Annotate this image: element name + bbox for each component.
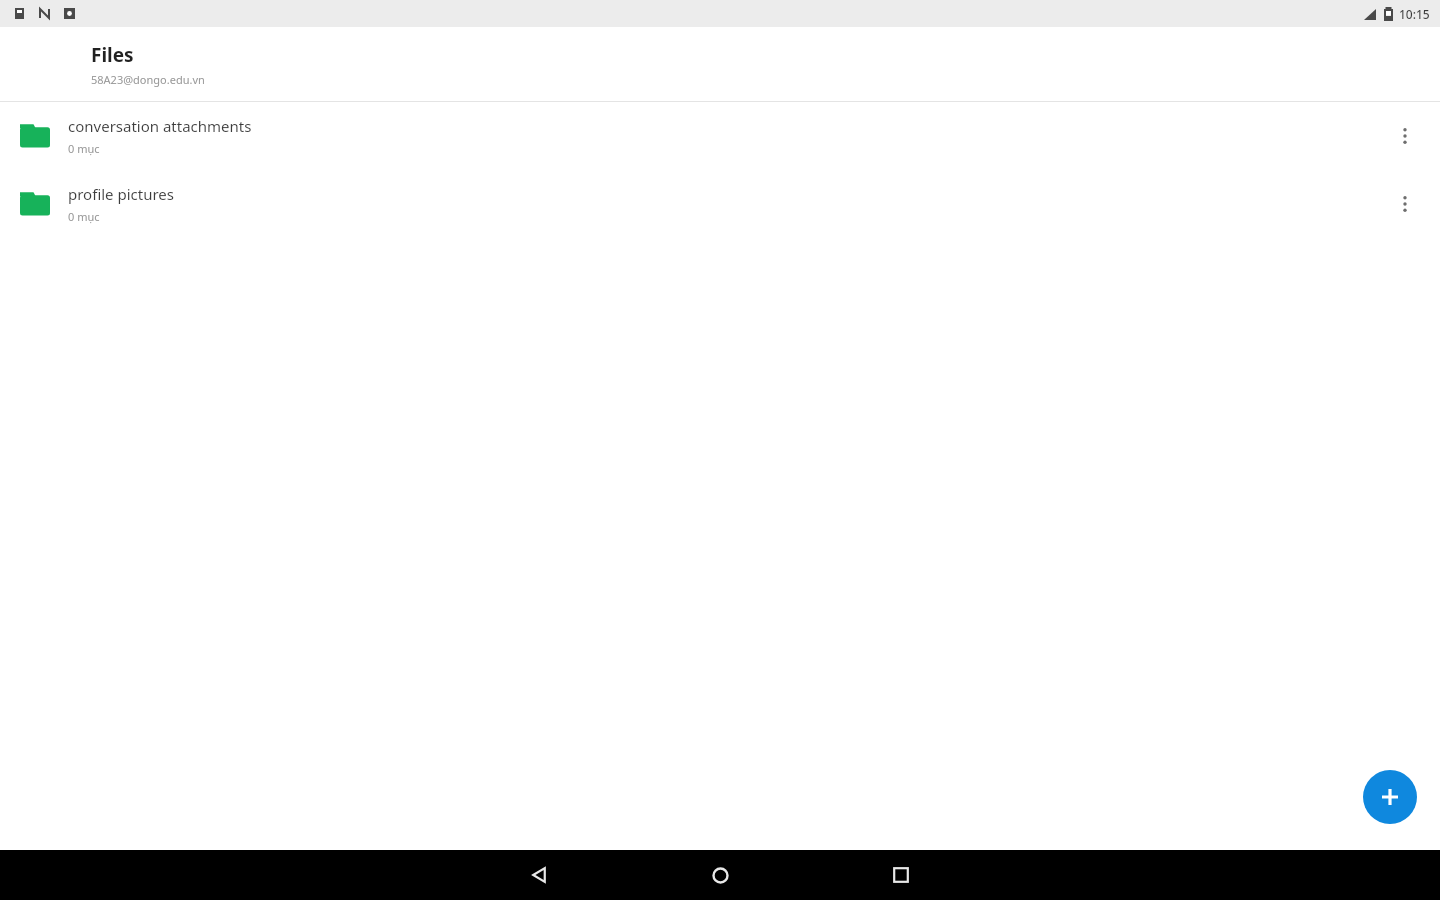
button[interactable]: Recent apps	[876, 850, 926, 900]
staticText: 58A23@dongo.edu.vn	[91, 72, 205, 87]
staticText: Files	[91, 42, 134, 68]
button[interactable]: Home	[695, 850, 745, 900]
button[interactable]: conversation attachments	[0, 102, 1440, 170]
staticText: 0 mục	[68, 141, 100, 156]
staticText: profile pictures	[68, 184, 174, 204]
staticText: 10:15	[1399, 6, 1430, 22]
staticText: 0 mục	[68, 209, 100, 224]
button[interactable]: Add	[1363, 770, 1417, 824]
button[interactable]: profile pictures	[0, 170, 1440, 238]
button[interactable]: More options	[1388, 112, 1422, 160]
button[interactable]: Back	[514, 850, 564, 900]
button[interactable]: More options	[1388, 180, 1422, 228]
staticText: conversation attachments	[68, 116, 252, 136]
